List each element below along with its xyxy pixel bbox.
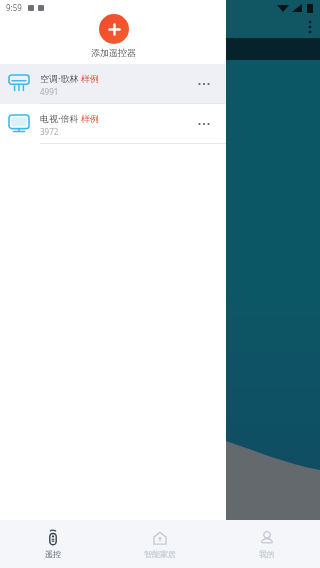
staticText: 遥控 [45, 549, 61, 559]
button[interactable]: More options [192, 112, 216, 136]
button[interactable]: 空调·歌林 样例 [0, 64, 226, 104]
staticText: 电视·倍科 样例 [40, 112, 99, 124]
button[interactable]: More options [192, 72, 216, 96]
staticText: 9:59 [6, 2, 22, 13]
staticText: 智能家居 [144, 549, 176, 559]
button[interactable]: 我的 [213, 520, 320, 568]
button[interactable]: 智能家居 [106, 520, 213, 568]
staticText: 空调·歌林 样例 [40, 72, 99, 84]
button[interactable]: 遥控 [0, 520, 106, 568]
staticText: 3972 [40, 126, 59, 137]
button[interactable]: 电视·倍科 样例 [0, 104, 226, 144]
staticText: 我的 [259, 549, 275, 559]
button[interactable]: 添加遥控器 [99, 14, 129, 44]
staticText: 添加遥控器 [91, 47, 136, 58]
staticText: 4991 [40, 86, 59, 97]
